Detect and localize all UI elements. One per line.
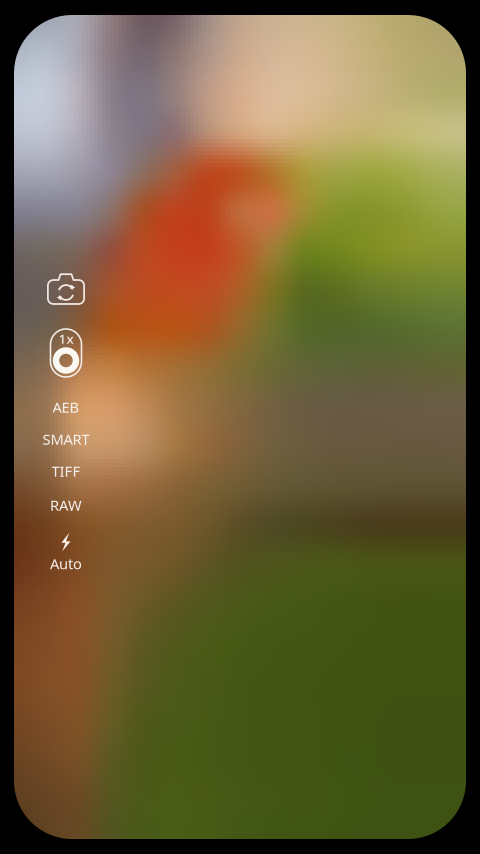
button[interactable]: AEB bbox=[14, 394, 118, 420]
button[interactable]: RAW bbox=[14, 492, 118, 518]
staticText: Auto bbox=[50, 554, 82, 573]
button[interactable]: TIFF bbox=[14, 458, 118, 484]
staticText: SMART bbox=[42, 429, 89, 449]
button[interactable]: Flash, auto bbox=[14, 532, 118, 574]
staticText: TIFF bbox=[51, 461, 80, 481]
staticText: RAW bbox=[50, 495, 82, 515]
button[interactable]: Zoom, 1x bbox=[14, 326, 118, 380]
staticText: AEB bbox=[52, 397, 79, 417]
staticText: 1x bbox=[58, 330, 73, 347]
button[interactable]: SMART bbox=[14, 426, 118, 452]
button[interactable]: Switch camera bbox=[14, 269, 118, 309]
